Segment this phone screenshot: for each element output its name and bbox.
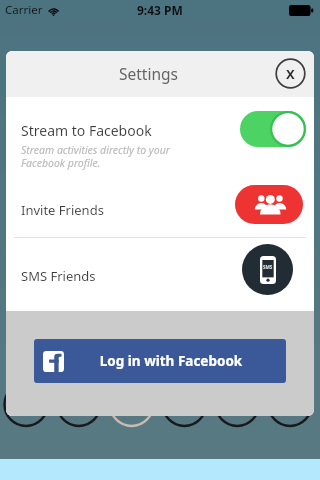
button[interactable]: Invite Friends <box>235 185 303 224</box>
staticText: Carrier <box>5 2 43 18</box>
button[interactable]: Close <box>275 58 306 89</box>
staticText: Settings <box>119 63 178 84</box>
button[interactable]: Stream to Facebook toggle <box>240 111 306 147</box>
button[interactable]: Invite Friends <box>6 175 314 237</box>
button[interactable]: SMS Friends <box>242 244 293 295</box>
staticText: SMS Friends <box>21 267 242 285</box>
staticText: Log in with Facebook <box>64 352 278 370</box>
button[interactable]: Log in with Facebook <box>34 339 286 383</box>
staticText: SMS <box>263 264 273 270</box>
staticText: Stream to Facebook <box>21 121 152 140</box>
staticText: X <box>286 65 295 83</box>
staticText: Invite Friends <box>21 201 235 219</box>
button[interactable]: SMS Friends <box>6 237 314 311</box>
staticText: Stream activities directly to your Faceb… <box>21 143 170 170</box>
staticText: 9:43 PM <box>137 2 183 18</box>
